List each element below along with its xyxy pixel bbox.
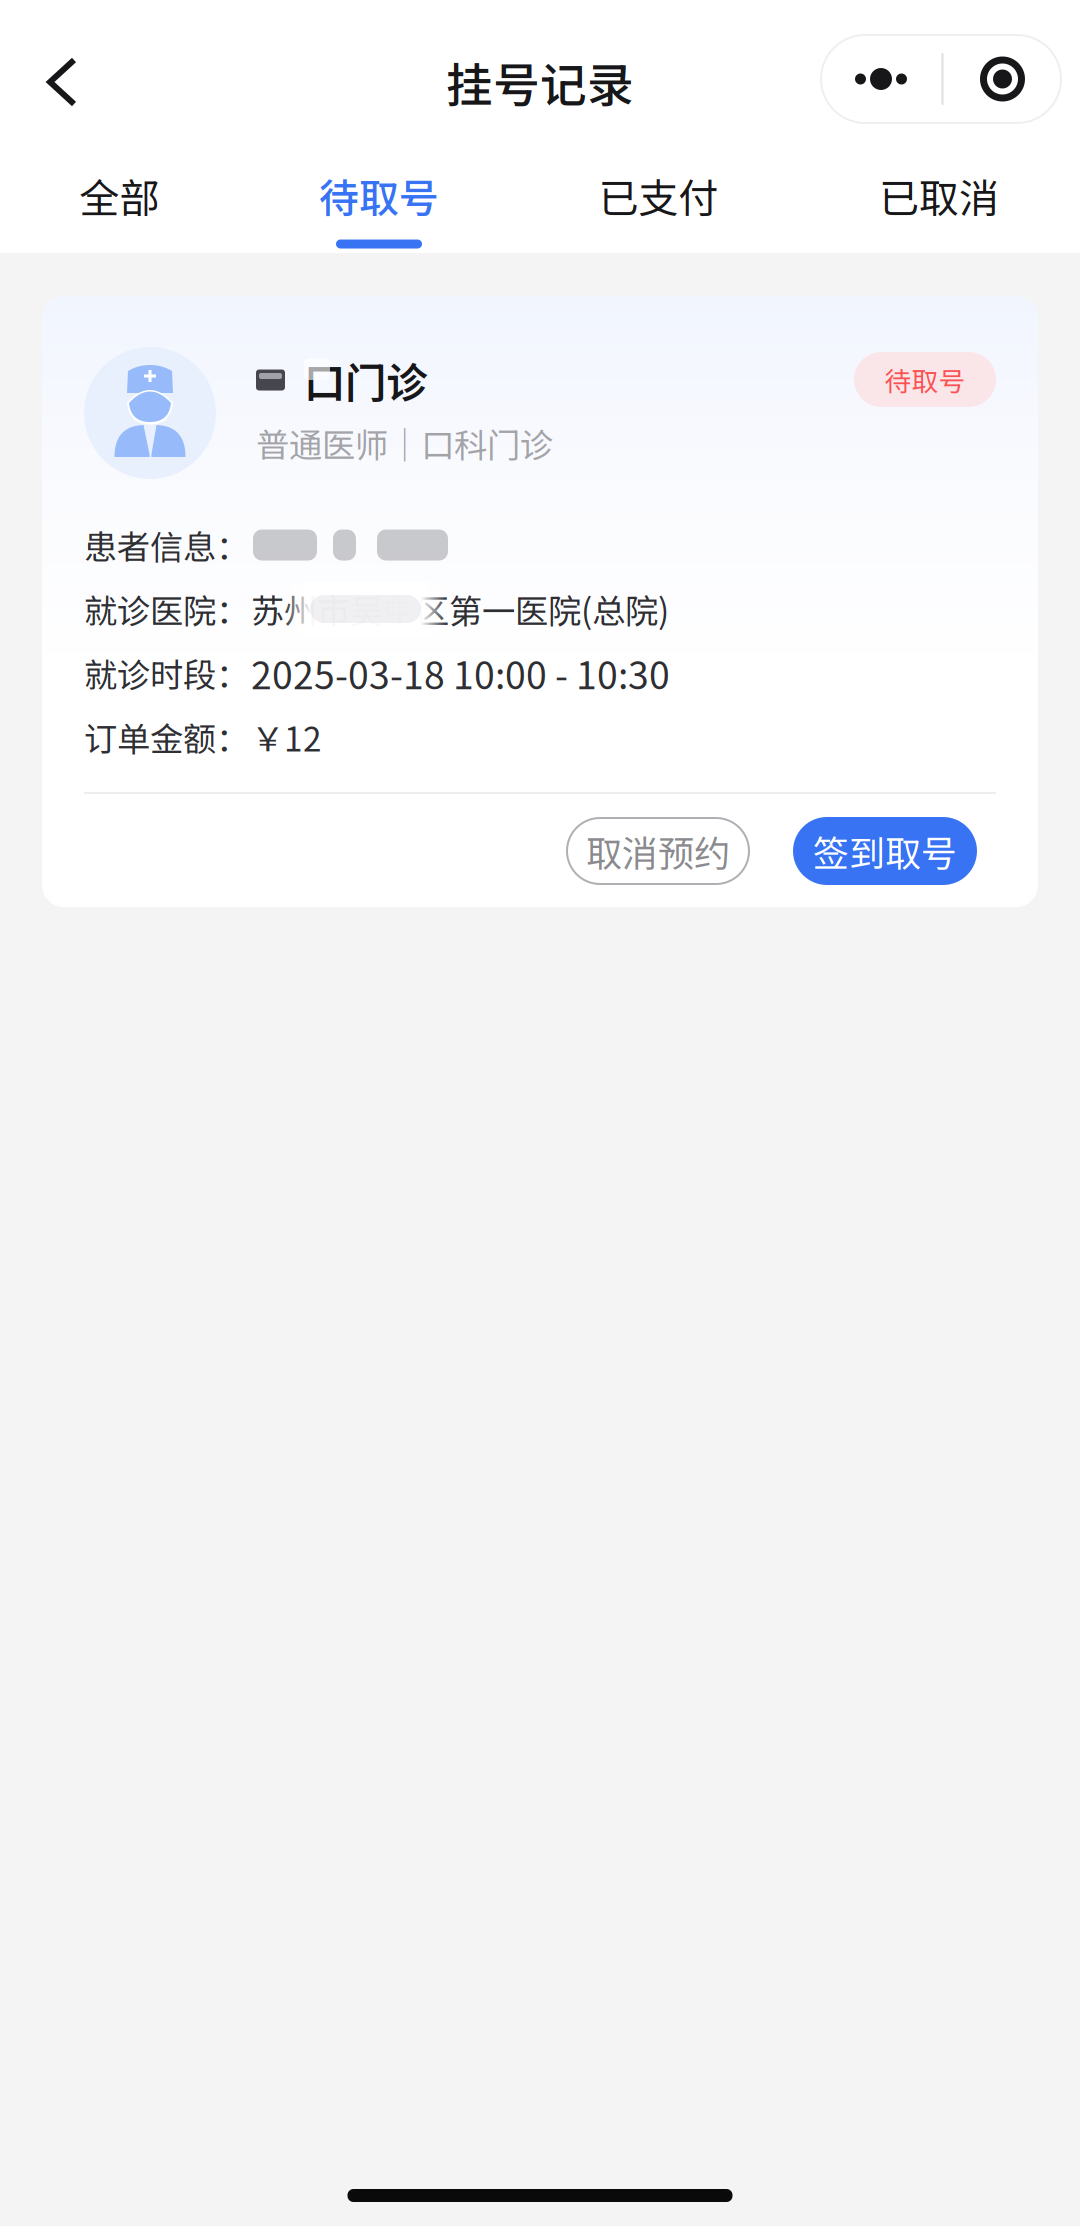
staticText: 签到取号: [813, 825, 957, 877]
staticText: 患者信息：: [84, 521, 249, 569]
staticText: 订单金额：: [84, 713, 249, 761]
staticText: ￥12: [251, 713, 322, 761]
staticText: 取消预约: [586, 825, 730, 877]
button[interactable]: 已取消: [798, 158, 1080, 253]
staticText: 2025-03-18 10:00 - 10:30: [251, 646, 670, 700]
staticText: 口门诊: [304, 350, 427, 410]
staticText: 已支付: [598, 166, 718, 224]
button[interactable]: 待取号: [239, 158, 519, 253]
button[interactable]: 返回: [0, 16, 124, 142]
staticText: 全部: [79, 166, 159, 224]
staticText: 已取消: [879, 166, 999, 224]
button[interactable]: 取消预约: [567, 818, 749, 884]
button[interactable]: 已支付: [519, 158, 798, 253]
staticText: 普通医师｜口科门诊: [256, 419, 553, 467]
button[interactable]: 全部: [0, 158, 239, 253]
staticText: 就诊时段：: [84, 649, 249, 697]
button[interactable]: 更多: [821, 35, 1061, 123]
staticText: 就诊医院：: [84, 585, 249, 633]
staticText: 待取号: [884, 360, 965, 399]
staticText: 待取号: [319, 166, 439, 224]
staticText: 苏州市吴中区第一医院(总院): [251, 585, 669, 633]
staticText: 挂号记录: [446, 48, 634, 116]
button[interactable]: 签到取号: [793, 817, 977, 885]
